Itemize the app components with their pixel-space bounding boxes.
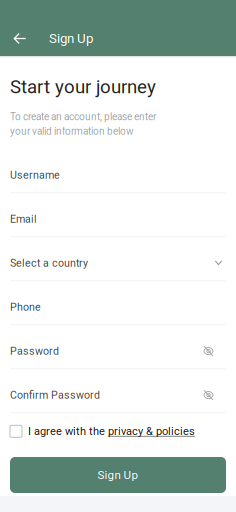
staticText: Start your journey (10, 76, 156, 98)
button[interactable]: Select a country (10, 237, 226, 281)
staticText: Phone (10, 301, 41, 313)
button[interactable]: Password (10, 325, 226, 369)
button[interactable]: I agree with the privacy & policies (10, 423, 226, 439)
button[interactable]: Username (10, 149, 226, 193)
staticText: Sign Up (97, 468, 138, 482)
button[interactable]: Sign Up (10, 457, 226, 493)
staticText: Email (10, 213, 37, 225)
staticText: Select a country (10, 257, 88, 269)
button[interactable]: Confirm Password (10, 369, 226, 413)
button[interactable]: Email (10, 193, 226, 237)
staticText: Username (10, 169, 60, 181)
button[interactable]: Back (9, 27, 31, 49)
button[interactable]: Phone (10, 281, 226, 325)
staticText: I agree with the privacy & policies (28, 425, 195, 438)
staticText: Password (10, 345, 59, 357)
staticText: Sign Up (49, 31, 93, 46)
staticText: To create an account, please enter your … (10, 111, 156, 137)
staticText: Confirm Password (10, 389, 100, 401)
